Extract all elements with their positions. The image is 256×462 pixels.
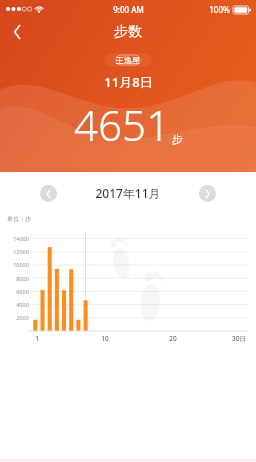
staticText: 100% [209,4,230,15]
staticText: 1 [35,334,39,343]
staticText: 10000 [13,261,29,268]
staticText: 12000 [13,248,29,255]
staticText: 2000 [16,314,29,321]
staticText: 11月8日 [104,73,153,91]
button[interactable]: Previous month [40,185,57,202]
staticText: 步 [172,132,183,146]
staticText: 王逸星 [116,55,140,65]
staticText: 14000 [13,235,29,242]
staticText: 步数 [114,23,142,41]
staticText: 20 [169,334,177,343]
staticText: 单位：步 [7,215,31,223]
staticText: 8000 [16,275,29,282]
staticText: 4000 [16,301,29,308]
staticText: 30日 [232,334,246,343]
staticText: 2017年11月 [95,185,161,201]
staticText: 4651 [74,96,170,153]
button[interactable]: Back [0,18,34,46]
button[interactable]: 王逸星 [104,53,152,67]
staticText: 9:00 AM [113,4,144,15]
staticText: 10 [101,334,109,343]
button[interactable]: Next month [199,185,216,202]
staticText: 6000 [16,288,29,295]
